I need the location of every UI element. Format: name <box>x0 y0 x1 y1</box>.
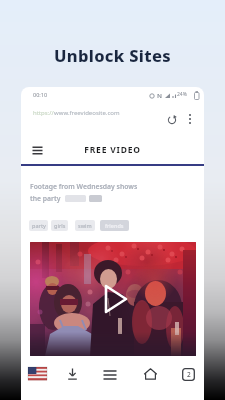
staticText: party <box>32 222 46 229</box>
staticText: Unblock Sites <box>0 44 225 66</box>
staticText: FREE VIDEO <box>21 144 204 156</box>
staticText: www.freevideosite.com <box>54 109 120 117</box>
button[interactable]: girls <box>51 220 68 231</box>
button[interactable] <box>167 115 177 125</box>
staticText: girls <box>54 222 66 229</box>
button[interactable] <box>185 113 195 125</box>
button[interactable] <box>32 146 44 155</box>
staticText: 00:10 <box>33 91 48 98</box>
button[interactable] <box>28 367 47 380</box>
staticText: 24% <box>177 91 187 98</box>
button[interactable]: party <box>29 220 48 231</box>
button[interactable]: swim <box>75 220 95 231</box>
staticText: friends <box>105 222 124 229</box>
button[interactable]: friends <box>100 220 129 231</box>
staticText: https:// <box>33 109 54 117</box>
button[interactable] <box>30 242 196 356</box>
button[interactable] <box>143 368 158 380</box>
staticText: 2 <box>187 370 191 379</box>
staticText: swim <box>78 222 92 229</box>
button[interactable] <box>66 368 79 381</box>
staticText: the party <box>30 194 61 203</box>
button[interactable]: 2 <box>182 368 195 381</box>
button[interactable] <box>103 370 117 380</box>
staticText: Footage from Wednesday shows <box>30 182 138 191</box>
